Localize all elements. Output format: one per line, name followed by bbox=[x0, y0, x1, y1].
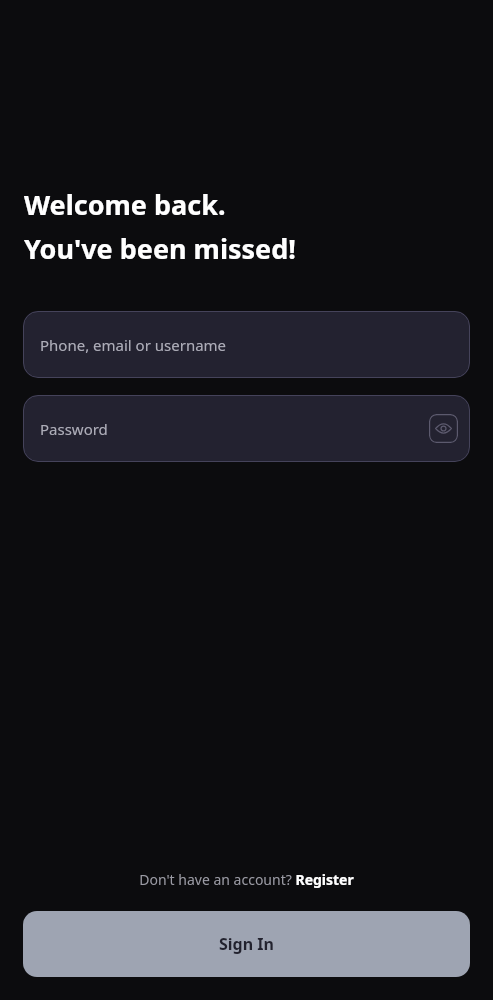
staticText: Welcome back. bbox=[24, 186, 226, 223]
button[interactable]: Sign In bbox=[23, 911, 470, 977]
staticText: Sign In bbox=[219, 933, 274, 955]
staticText: Password bbox=[40, 419, 108, 439]
button[interactable]: Password bbox=[23, 395, 470, 462]
button[interactable]: Show password bbox=[429, 414, 458, 443]
staticText: Phone, email or username bbox=[40, 335, 227, 355]
staticText: Don't have an account? Register bbox=[139, 870, 354, 889]
button[interactable]: Phone, email or username bbox=[23, 311, 470, 378]
staticText: You've been missed! bbox=[24, 230, 296, 267]
button[interactable]: Don't have an account? Register bbox=[0, 870, 493, 889]
